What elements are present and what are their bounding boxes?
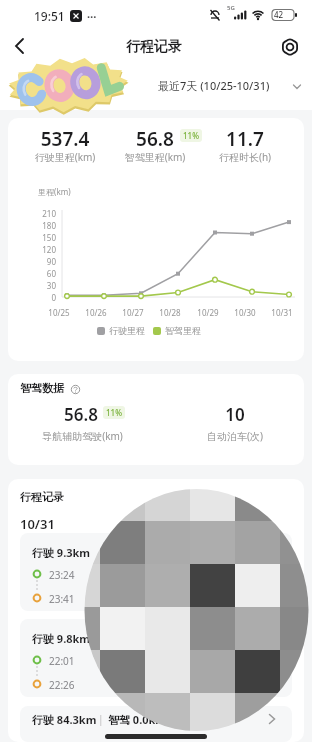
staticText: 537.4 [20, 126, 110, 152]
staticText: 23:24 [49, 568, 75, 582]
staticText: 19:51 [34, 8, 65, 24]
staticText: 10/25 [45, 307, 73, 318]
staticText: 30 [30, 280, 56, 291]
staticText: 11% [180, 130, 202, 141]
staticText: 10 [190, 403, 280, 426]
staticText: 行程时长(h) [200, 150, 290, 164]
staticText: 0 [30, 292, 56, 303]
staticText: 导航辅助驾驶(km) [20, 429, 145, 443]
staticText: 10/30 [231, 307, 259, 318]
staticText: 56.8 [115, 126, 195, 152]
button[interactable]: 最近7天 (10/25-10/31) [158, 76, 304, 96]
staticText: 22:26 [49, 678, 75, 692]
staticText: 22:01 [49, 654, 75, 668]
staticText: 自动泊车(次) [190, 429, 280, 443]
staticText: 10/28 [156, 307, 184, 318]
staticText: 行驶里程 [109, 325, 145, 336]
staticText: 90 [30, 256, 56, 267]
staticText: | [98, 712, 104, 726]
staticText: 智驾里程 [165, 325, 201, 336]
staticText: 10/27 [119, 307, 147, 318]
staticText: 56.8 [46, 403, 116, 426]
staticText: 智驾 0.0km [108, 712, 167, 727]
staticText: 行程记录 [124, 38, 184, 56]
button[interactable] [276, 34, 304, 60]
staticText: … [87, 6, 97, 21]
staticText: 10/26 [82, 307, 110, 318]
staticText: 120 [30, 244, 56, 255]
button[interactable] [20, 533, 292, 611]
button[interactable] [6, 32, 38, 60]
staticText: 行程记录 [20, 490, 64, 504]
staticText: 11.7 [200, 126, 290, 152]
staticText: 150 [30, 232, 56, 243]
staticText: 60 [30, 268, 56, 279]
staticText: 行驶 9.8km [32, 631, 91, 646]
button[interactable] [20, 706, 292, 742]
staticText: 11% [103, 407, 125, 418]
staticText: 5G [227, 4, 235, 12]
staticText: 行驶里程(km) [20, 150, 110, 164]
staticText: 10/31 [20, 515, 55, 533]
staticText: 最近7天 (10/25-10/31) [158, 78, 270, 93]
staticText: 42 [274, 9, 284, 20]
staticText: 智驾里程(km) [110, 150, 200, 164]
staticText: 210 [30, 208, 56, 219]
staticText: 里程(km) [38, 186, 71, 197]
staticText: 10/31 [268, 307, 296, 318]
staticText: 智驾数据 [20, 381, 64, 395]
staticText: 行驶 84.3km [32, 712, 97, 727]
staticText: 行驶 9.3km [32, 545, 91, 560]
staticText: 10/29 [194, 307, 222, 318]
staticText: 23:41 [49, 592, 75, 606]
staticText: 180 [30, 220, 56, 231]
button[interactable] [20, 619, 292, 697]
